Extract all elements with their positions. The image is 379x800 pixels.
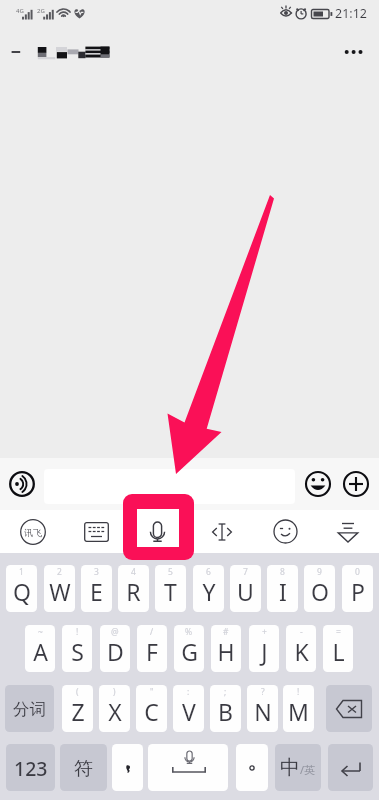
- staticText: I: [279, 576, 287, 607]
- staticText: C: [144, 696, 159, 727]
- staticText: W: [49, 576, 71, 607]
- button[interactable]: 中: [275, 744, 321, 791]
- staticText: V: [182, 696, 196, 727]
- staticText: R: [126, 576, 141, 607]
- button[interactable]: +: [249, 625, 279, 672]
- staticText: 符: [74, 757, 93, 781]
- staticText: 21:12: [335, 5, 367, 22]
- staticText: (: [76, 686, 79, 698]
- staticText: T: [164, 576, 177, 607]
- staticText: K: [294, 636, 309, 667]
- staticText: G: [181, 636, 198, 667]
- button[interactable]: ?: [247, 685, 278, 732]
- staticText: U: [237, 576, 254, 607]
- button[interactable]: 2: [44, 565, 75, 612]
- button[interactable]: (: [62, 685, 93, 732]
- staticText: 1: [19, 566, 24, 578]
- button[interactable]: [44, 469, 295, 504]
- button[interactable]: #: [211, 625, 241, 672]
- staticText: 2G: [37, 7, 45, 15]
- button[interactable]: Move cursor: [198, 510, 246, 553]
- staticText: @: [111, 626, 119, 638]
- button[interactable]: !: [62, 625, 92, 672]
- button[interactable]: ~: [25, 625, 55, 672]
- staticText: D: [107, 636, 124, 667]
- staticText: B: [218, 696, 233, 727]
- button[interactable]: 符: [60, 744, 107, 791]
- staticText: S: [71, 636, 84, 667]
- staticText: O: [311, 576, 329, 607]
- staticText: =: [336, 626, 341, 638]
- staticText: 5: [168, 566, 173, 578]
- staticText: Z: [71, 696, 85, 727]
- staticText: 0: [355, 566, 360, 578]
- button[interactable]: %: [174, 625, 204, 672]
- button[interactable]: 8: [267, 565, 298, 612]
- staticText: F: [146, 636, 158, 667]
- button[interactable]: @: [100, 625, 130, 672]
- button[interactable]: [112, 744, 143, 791]
- button[interactable]: 3: [81, 565, 112, 612]
- staticText: L: [332, 636, 345, 667]
- staticText: ?: [261, 686, 265, 698]
- button[interactable]: 分词: [5, 685, 54, 732]
- staticText: ": [150, 686, 154, 698]
- button[interactable]: Keyboard layout: [72, 510, 120, 553]
- staticText: 3: [94, 566, 99, 578]
- staticText: :: [187, 686, 190, 698]
- button[interactable]: -: [286, 625, 316, 672]
- staticText: ;: [224, 686, 227, 698]
- staticText: 9: [317, 566, 322, 578]
- staticText: H: [217, 636, 235, 667]
- button[interactable]: Input method: [9, 510, 57, 553]
- button[interactable]: Voice message: [4, 460, 40, 508]
- staticText: Y: [202, 576, 216, 607]
- button[interactable]: ": [136, 685, 167, 732]
- staticText: !: [76, 626, 79, 638]
- button[interactable]: :: [173, 685, 204, 732]
- button[interactable]: [236, 744, 268, 791]
- button[interactable]: 1: [6, 565, 37, 612]
- staticText: %: [185, 626, 193, 638]
- button[interactable]: !: [283, 685, 314, 732]
- staticText: P: [351, 576, 365, 607]
- button[interactable]: 7: [230, 565, 261, 612]
- button[interactable]: 5: [155, 565, 186, 612]
- staticText: /: [150, 626, 154, 638]
- staticText: !: [297, 686, 300, 698]
- button[interactable]: More options: [331, 31, 377, 72]
- staticText: ): [113, 686, 116, 698]
- button[interactable]: /: [137, 625, 167, 672]
- staticText: 2: [57, 566, 62, 578]
- staticText: 4: [131, 566, 136, 578]
- staticText: 6: [206, 566, 211, 578]
- button[interactable]: Hide keyboard: [324, 510, 372, 553]
- staticText: #: [223, 626, 229, 638]
- staticText: /英: [300, 762, 316, 777]
- button[interactable]: More functions: [338, 462, 374, 506]
- staticText: 4G: [16, 7, 24, 15]
- button[interactable]: 6: [193, 565, 224, 612]
- button[interactable]: =: [323, 625, 353, 672]
- staticText: A: [33, 636, 48, 667]
- button[interactable]: Enter: [328, 744, 373, 791]
- staticText: 123: [14, 755, 48, 782]
- staticText: X: [108, 696, 122, 727]
- staticText: -: [300, 626, 303, 638]
- button[interactable]: Back: [0, 29, 38, 74]
- staticText: 7: [243, 566, 248, 578]
- staticText: 8: [280, 566, 285, 578]
- button[interactable]: ): [99, 685, 130, 732]
- staticText: 分词: [13, 699, 46, 720]
- button[interactable]: Backspace: [326, 685, 372, 732]
- button[interactable]: [148, 744, 228, 791]
- button[interactable]: 9: [304, 565, 335, 612]
- button[interactable]: 4: [118, 565, 149, 612]
- button[interactable]: Voice input: [135, 510, 183, 553]
- button[interactable]: Emoji: [300, 462, 336, 506]
- button[interactable]: 123: [6, 744, 55, 791]
- button[interactable]: ;: [210, 685, 241, 732]
- button[interactable]: Emoticons: [261, 510, 309, 553]
- staticText: +: [262, 626, 267, 638]
- button[interactable]: 0: [342, 565, 373, 612]
